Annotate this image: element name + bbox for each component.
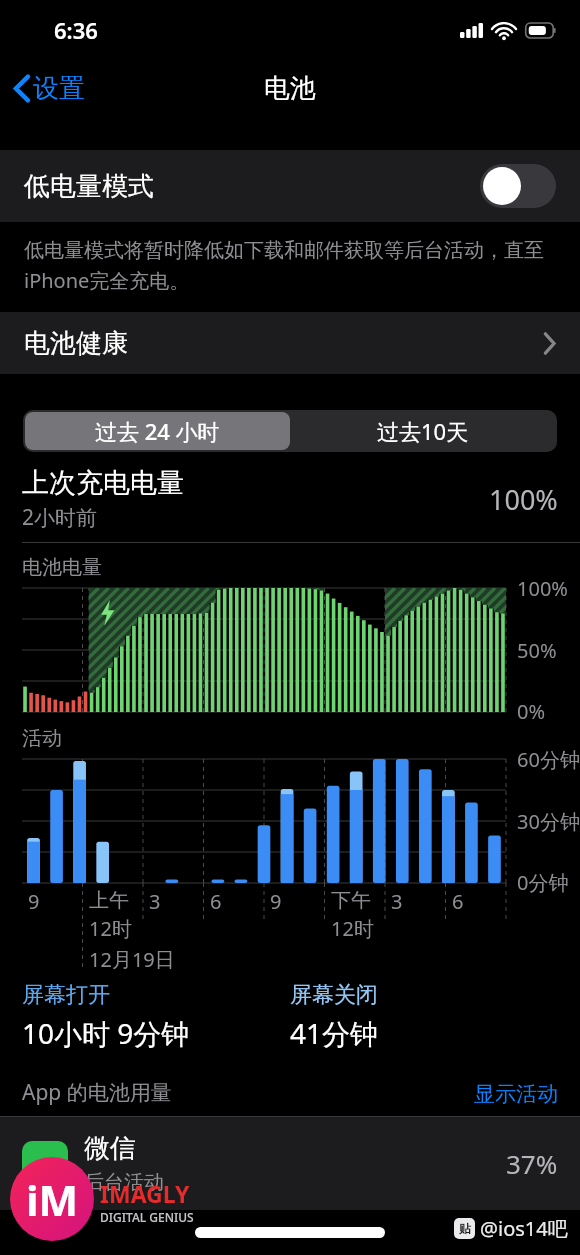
button[interactable]: 显示活动 xyxy=(474,1081,558,1107)
staticText: 60分钟 xyxy=(517,746,580,773)
staticText: 上午 xyxy=(89,888,129,913)
staticText: 屏幕关闭 xyxy=(290,981,378,1009)
staticText: 活动 xyxy=(22,726,62,751)
staticText: 41分钟 xyxy=(290,1014,379,1052)
staticText: 6 xyxy=(452,888,464,915)
staticText: 6 xyxy=(210,888,222,915)
staticText: 0% xyxy=(517,698,546,725)
staticText: DIGITAL GENIUS xyxy=(100,1209,194,1225)
staticText: 电池健康 xyxy=(24,327,128,360)
staticText: 上次充电电量 xyxy=(22,466,184,500)
staticText: IMAGLY xyxy=(100,1178,190,1209)
button[interactable]: 低电量模式开关 xyxy=(480,164,556,208)
staticText: 贴 xyxy=(459,1221,471,1236)
staticText: 6:36 xyxy=(54,15,98,45)
staticText: 低电量模式将暂时降低如下载和邮件获取等后台活动，直至 iPhone完全充电。 xyxy=(24,238,544,294)
staticText: 低电量模式 xyxy=(24,170,154,203)
staticText: 100% xyxy=(517,575,568,602)
staticText: 2小时前 xyxy=(22,503,98,532)
staticText: 微信 xyxy=(84,1132,136,1165)
button[interactable]: 设置 xyxy=(0,64,97,113)
staticText: 12时 xyxy=(89,915,132,942)
staticText: 过去 24 小时 xyxy=(95,416,220,446)
staticText: App 的电池用量 xyxy=(22,1078,172,1107)
button[interactable]: 过去10天 xyxy=(290,412,555,450)
staticText: 12时 xyxy=(331,915,374,942)
staticText: 10小时 9分钟 xyxy=(22,1014,190,1052)
button[interactable]: 低电量模式 xyxy=(0,150,580,222)
button[interactable]: 过去 24 小时 xyxy=(25,412,290,450)
staticText: 9 xyxy=(28,888,40,915)
staticText: 3 xyxy=(149,888,161,915)
staticText: 电池 xyxy=(264,72,316,105)
staticText: 9 xyxy=(270,888,282,915)
staticText: iM xyxy=(26,1171,79,1228)
staticText: 过去10天 xyxy=(377,416,469,446)
button[interactable]: 微信 xyxy=(0,1117,580,1210)
staticText: 0分钟 xyxy=(517,869,569,896)
staticText: 设置 xyxy=(33,72,85,105)
staticText: @ios14吧 xyxy=(480,1215,568,1242)
staticText: 屏幕打开 xyxy=(22,981,110,1009)
staticText: 显示活动 xyxy=(474,1081,558,1107)
staticText: 100% xyxy=(489,481,558,518)
button[interactable]: 电池健康 xyxy=(0,312,580,374)
staticText: 12月19日 xyxy=(89,946,175,973)
staticText: 37% xyxy=(506,1146,558,1181)
staticText: 50% xyxy=(517,637,557,664)
staticText: 后台活动 xyxy=(84,1170,164,1195)
staticText: 30分钟 xyxy=(517,808,580,835)
staticText: 下午 xyxy=(331,888,371,913)
staticText: 电池电量 xyxy=(22,555,102,580)
staticText: 3 xyxy=(391,888,403,915)
